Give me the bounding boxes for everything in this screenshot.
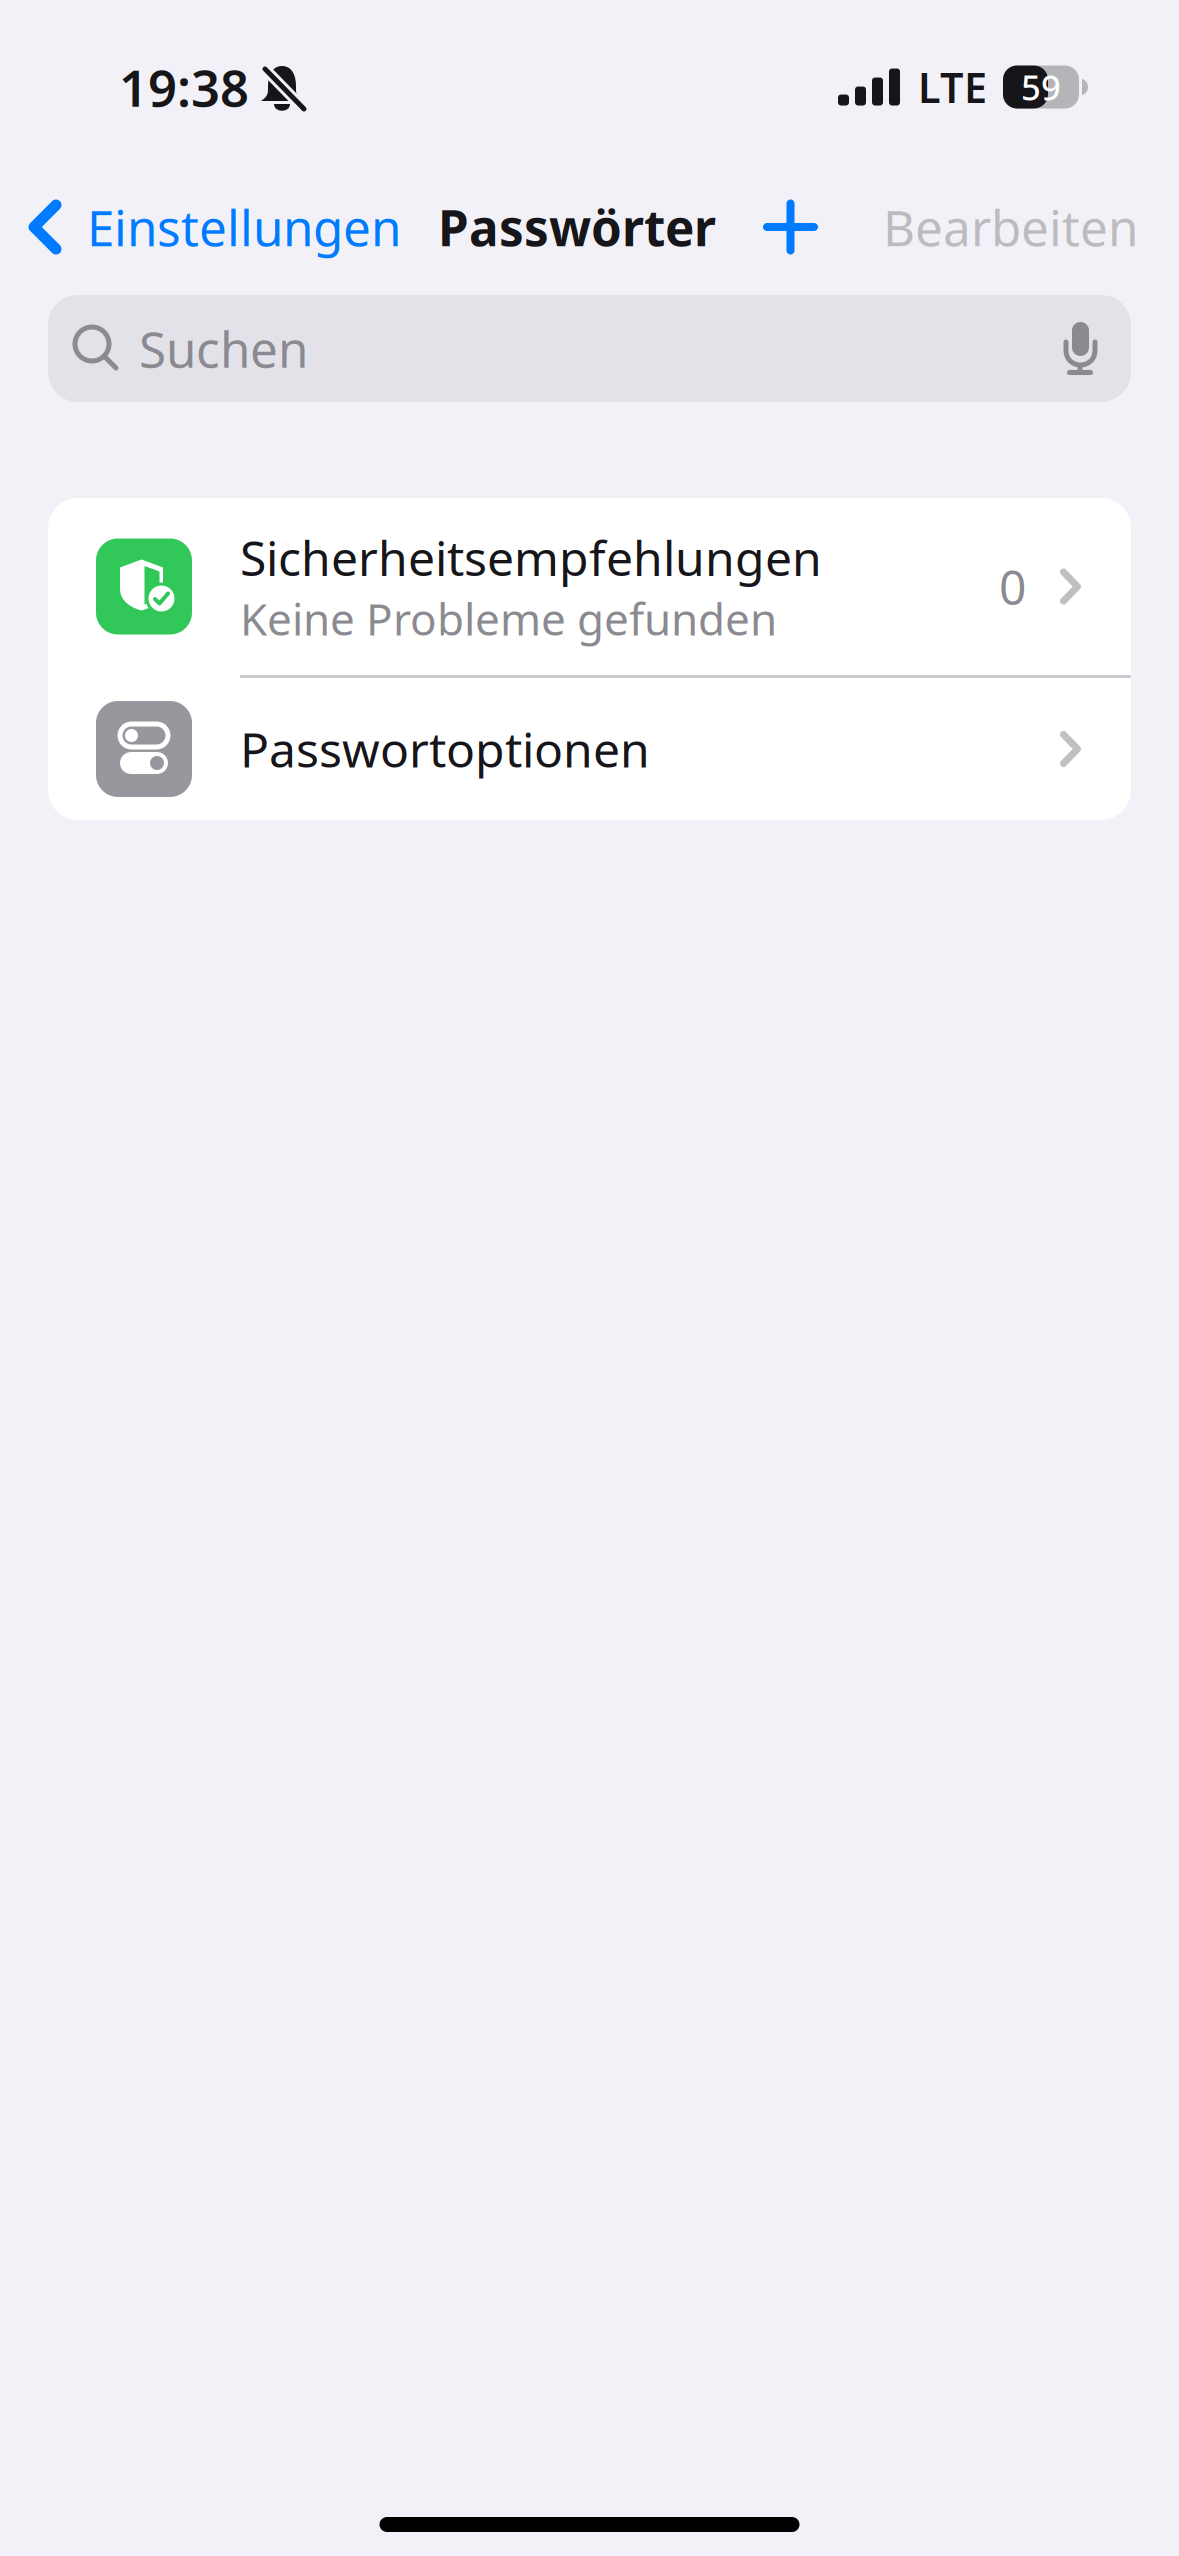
staticText: Sicherheitsempfehlungen bbox=[240, 525, 822, 589]
button[interactable]: Einstellungen bbox=[28, 180, 401, 274]
button[interactable]: Suchen bbox=[48, 295, 1131, 402]
staticText: LTE bbox=[918, 60, 987, 114]
staticText: Keine Probleme gefunden bbox=[240, 589, 777, 648]
staticText: 19:38 bbox=[119, 53, 249, 121]
staticText: Suchen bbox=[139, 316, 308, 381]
staticText: Einstellungen bbox=[87, 194, 401, 260]
button[interactable]: Bearbeiten bbox=[883, 180, 1138, 274]
staticText: 0 bbox=[999, 555, 1026, 618]
staticText: Bearbeiten bbox=[883, 194, 1138, 260]
staticText: 59 bbox=[1021, 64, 1061, 110]
button[interactable]: Sicherheitsempfehlungen bbox=[48, 498, 1131, 675]
button[interactable]: Passwort hinzufügen bbox=[757, 185, 824, 268]
staticText: Passwortoptionen bbox=[240, 717, 650, 781]
button[interactable]: Passwortoptionen bbox=[48, 678, 1131, 820]
staticText: Passwörter bbox=[438, 194, 716, 260]
